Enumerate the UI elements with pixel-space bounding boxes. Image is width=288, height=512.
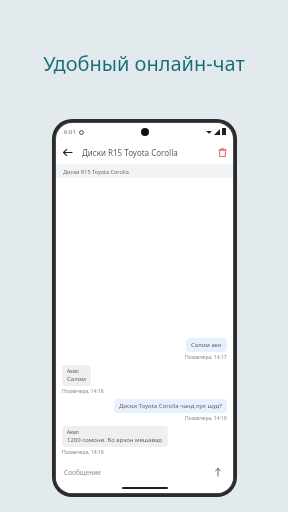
staticText: Удобный онлайн-чат — [0, 50, 288, 77]
staticText: Акмл — [67, 368, 79, 374]
staticText: Позавчера, 14:18 — [62, 388, 104, 395]
staticText: Позавчера, 14:19 — [185, 415, 227, 422]
staticText: Диски Toyota Corolla чанд пул шуд? — [119, 402, 222, 410]
button[interactable]: Акмл — [62, 426, 168, 447]
staticText: Позавчера, 14:17 — [185, 354, 227, 361]
staticText: Салом ако — [191, 341, 222, 349]
staticText: 1200 сомони. Бо арзон мешавад — [67, 436, 163, 444]
staticText: Акмл — [67, 429, 79, 435]
button[interactable]: Диски Toyota Corolla чанд пул шуд? — [114, 399, 227, 413]
staticText: Диски R15 Toyota Corolla — [82, 147, 178, 158]
button[interactable]: Сообщение — [64, 468, 211, 477]
button[interactable]: Send — [211, 465, 225, 479]
button[interactable]: Салом ако — [186, 338, 227, 352]
staticText: Позавчера, 14:19 — [62, 449, 104, 456]
button[interactable]: Delete — [211, 141, 233, 163]
staticText: Диски R15 Toyota Corolla — [63, 168, 129, 175]
button[interactable]: Акмл — [62, 365, 91, 386]
staticText: 6:01 — [64, 128, 76, 136]
staticText: Салом — [67, 375, 86, 383]
button[interactable]: Back — [56, 141, 78, 163]
